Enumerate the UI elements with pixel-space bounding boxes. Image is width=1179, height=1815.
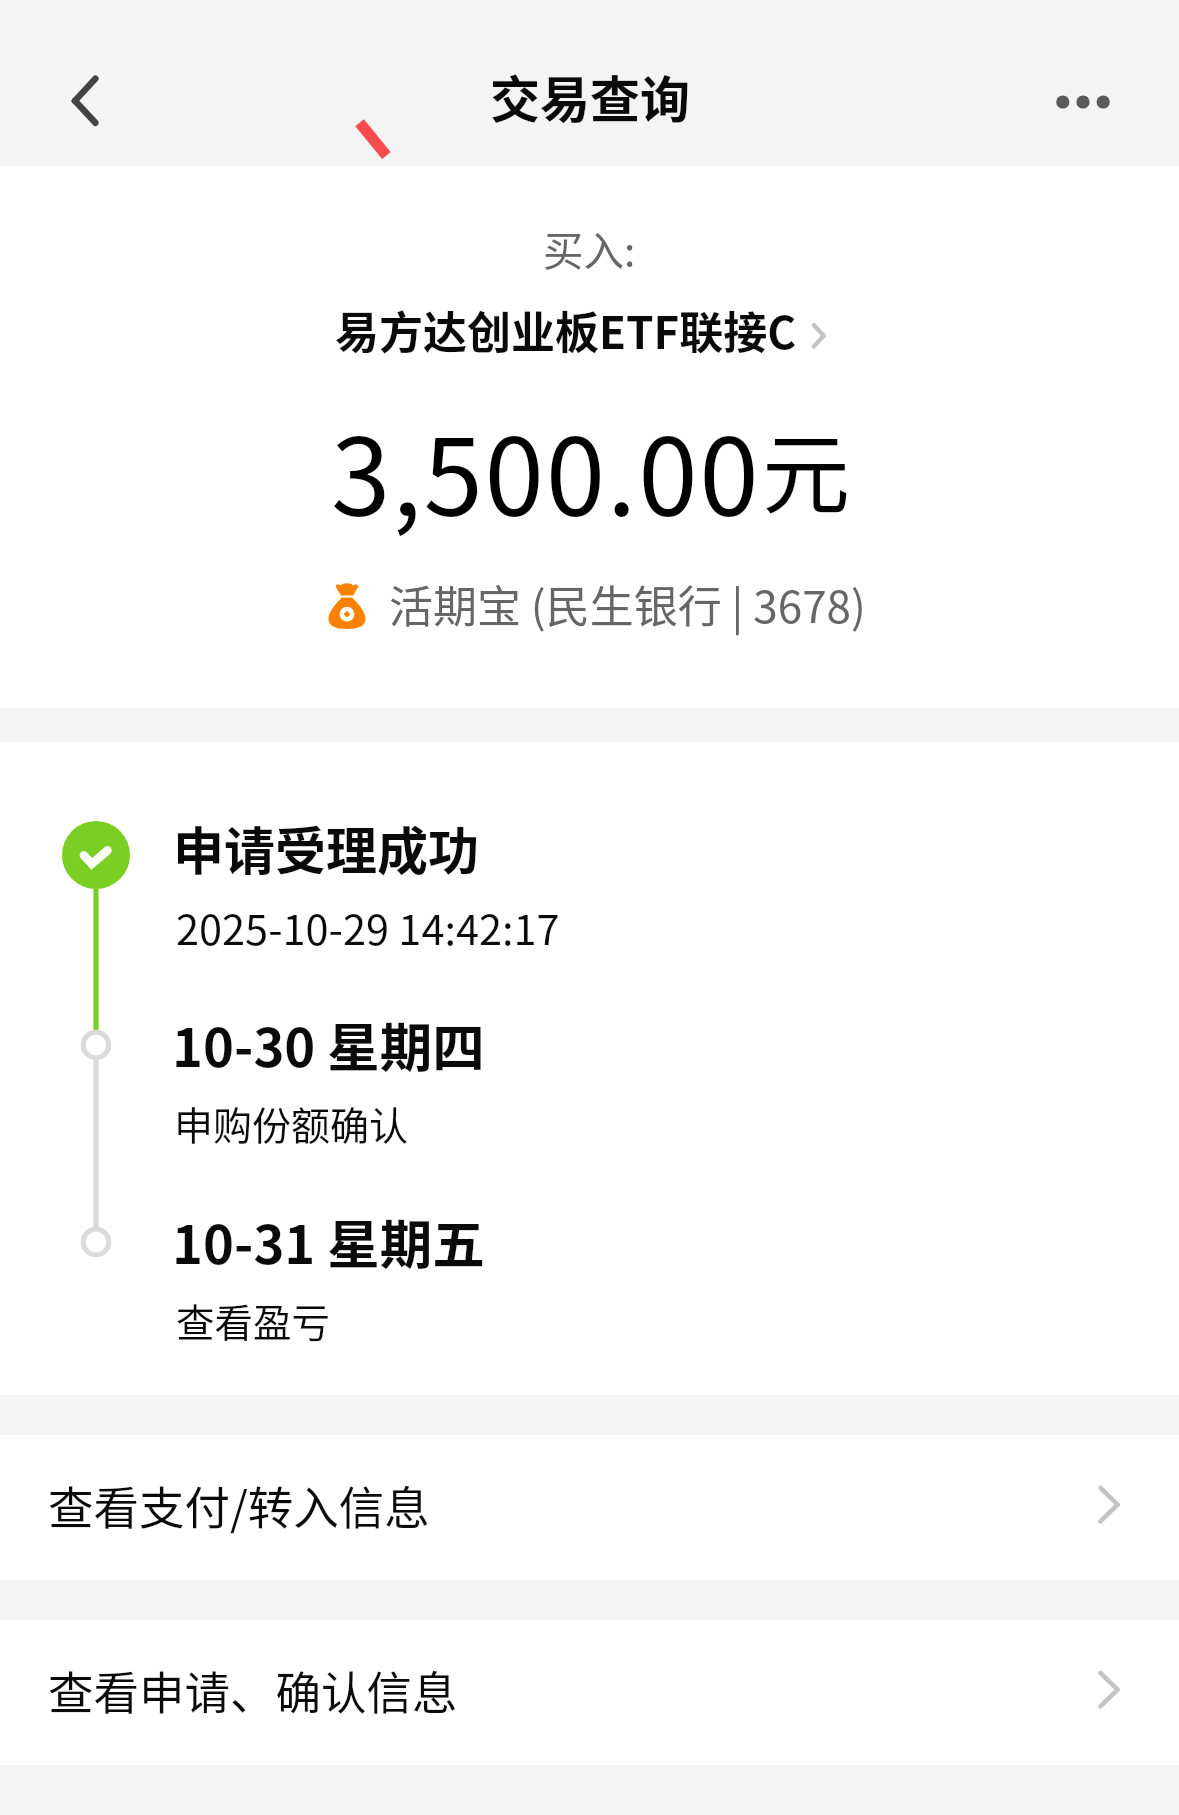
staticText: 10-31 星期五	[172, 1203, 485, 1279]
staticText: 10-30 星期四	[172, 1006, 485, 1082]
staticText: 申购份额确认	[174, 1095, 409, 1151]
staticText: 查看申请、确认信息	[48, 1657, 458, 1723]
button[interactable]: 查看申请、确认信息	[0, 1620, 1179, 1765]
staticText: 申请受理成功	[173, 811, 480, 885]
staticText: 元	[762, 404, 851, 531]
staticText: 易方达创业板ETF联接C	[335, 298, 797, 362]
staticText: 活期宝 (民生银行 | 3678)	[389, 572, 866, 636]
staticText: 查看支付/转入信息	[48, 1472, 430, 1538]
button[interactable]: More options	[1038, 56, 1128, 146]
staticText: 交易查询	[490, 60, 690, 132]
staticText: 2025-10-29 14:42:17	[176, 897, 560, 957]
staticText: 买入:	[543, 219, 636, 278]
staticText: 查看盈亏	[176, 1292, 331, 1348]
staticText: 3,500.00	[331, 392, 761, 547]
button[interactable]: Back	[39, 54, 131, 146]
button[interactable]: 查看支付/转入信息	[0, 1435, 1179, 1580]
button[interactable]: 易方达创业板ETF联接C	[330, 296, 830, 368]
